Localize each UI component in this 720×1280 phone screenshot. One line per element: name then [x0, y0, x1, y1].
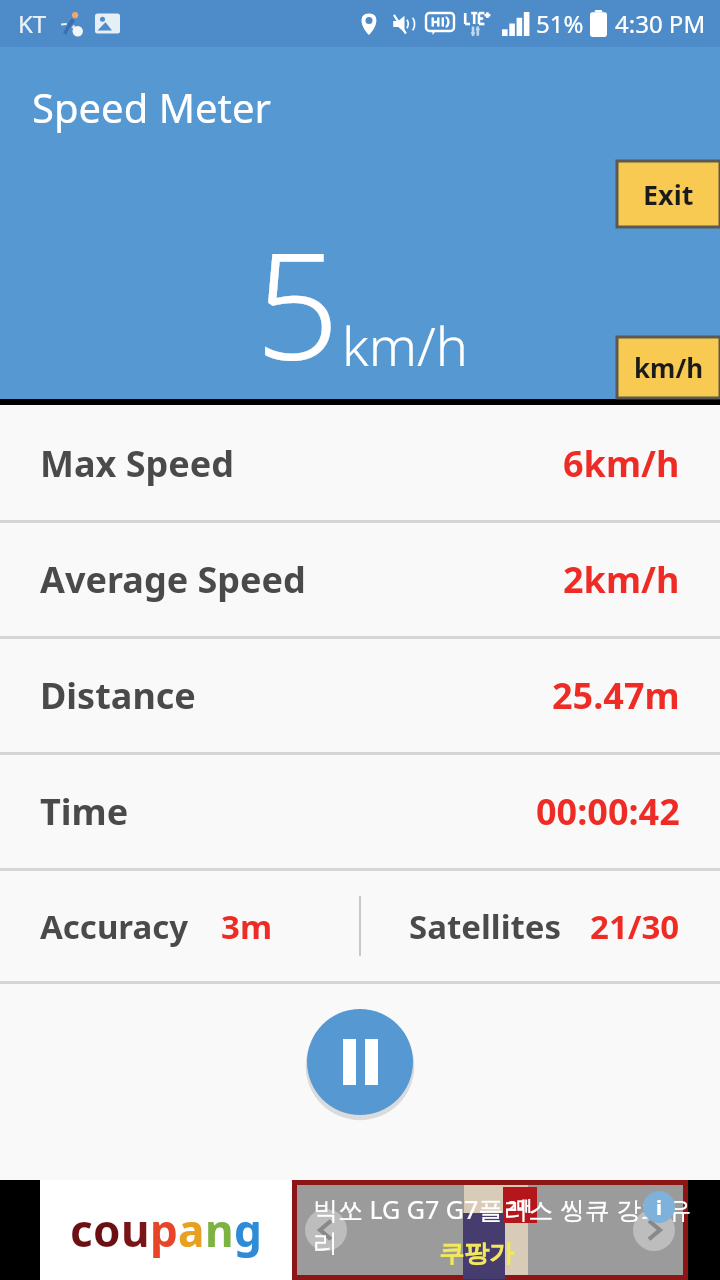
- staticText: 2매: [508, 1195, 532, 1215]
- staticText: 5: [255, 202, 340, 404]
- button[interactable]: km/h: [617, 337, 720, 398]
- staticText: o: [93, 1200, 121, 1260]
- button[interactable]: Ad info: [643, 1191, 675, 1223]
- staticText: p: [150, 1200, 178, 1260]
- staticText: Accuracy: [40, 904, 189, 949]
- staticText: 00:00:42: [536, 787, 680, 836]
- staticText: Satellites: [409, 904, 562, 949]
- button[interactable]: Average Speed: [0, 523, 720, 636]
- staticText: c: [70, 1200, 93, 1260]
- staticText: Time: [40, 787, 129, 836]
- staticText: 51%: [536, 7, 584, 40]
- staticText: 3m: [221, 904, 273, 949]
- staticText: u: [121, 1200, 150, 1260]
- staticText: Max Speed: [40, 439, 235, 488]
- button[interactable]: 2매: [292, 1180, 688, 1280]
- staticText: a: [178, 1200, 205, 1260]
- staticText: n: [205, 1200, 234, 1260]
- staticText: 쿠팡가: [439, 1238, 514, 1269]
- staticText: Exit: [643, 176, 694, 213]
- button[interactable]: Pause: [307, 1009, 413, 1115]
- staticText: 2km/h: [563, 555, 680, 604]
- staticText: i: [656, 1194, 662, 1221]
- staticText: 6km/h: [563, 439, 680, 488]
- button[interactable]: Accuracy: [0, 871, 720, 981]
- staticText: km/h: [342, 308, 468, 382]
- button[interactable]: Distance: [0, 639, 720, 752]
- staticText: 4:30 PM: [615, 7, 706, 40]
- staticText: 빅쏘 LG G7 G7플러스 씽큐 강화유리: [313, 1192, 699, 1260]
- button[interactable]: Time: [0, 755, 720, 868]
- button[interactable]: Max Speed: [0, 407, 720, 520]
- staticText: Distance: [40, 671, 196, 720]
- staticText: Speed Meter: [32, 80, 272, 134]
- staticText: 25.47m: [552, 671, 680, 720]
- staticText: KT: [18, 7, 47, 40]
- staticText: Average Speed: [40, 555, 306, 604]
- button[interactable]: c: [40, 1180, 292, 1280]
- staticText: 21/30: [590, 904, 680, 949]
- button[interactable]: Exit: [617, 161, 720, 227]
- staticText: km/h: [634, 350, 704, 385]
- staticText: g: [234, 1200, 262, 1260]
